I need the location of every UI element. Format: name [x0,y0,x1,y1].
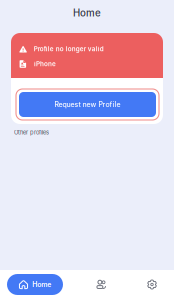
button[interactable]: Request new Profile [16,89,159,120]
staticText: Home [73,7,101,19]
button[interactable]: Home [7,274,63,295]
button[interactable]: Profiles [88,274,114,295]
staticText: iPhone [34,60,56,68]
button[interactable]: Settings [139,274,165,295]
staticText: Other profiles [14,129,49,136]
staticText: Profile no longer valid [34,45,104,53]
staticText: Request new Profile [54,100,120,109]
staticText: Home [32,280,51,289]
